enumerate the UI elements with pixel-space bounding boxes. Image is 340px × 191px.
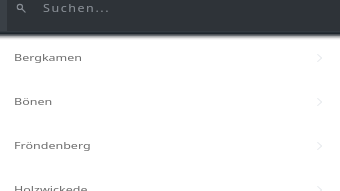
staticText: Bergkamen bbox=[14, 51, 317, 64]
staticText: Fröndenberg bbox=[14, 139, 317, 152]
button[interactable]: Fröndenberg bbox=[0, 123, 340, 167]
button[interactable]: Bönen bbox=[0, 79, 340, 123]
staticText: Bönen bbox=[14, 95, 317, 108]
button[interactable]: Holzwickede bbox=[0, 167, 340, 191]
staticText: Holzwickede bbox=[14, 183, 317, 191]
button[interactable]: Bergkamen bbox=[0, 35, 340, 79]
button[interactable]: Suchen bbox=[0, 0, 340, 32]
staticText: Suchen... bbox=[43, 1, 111, 15]
